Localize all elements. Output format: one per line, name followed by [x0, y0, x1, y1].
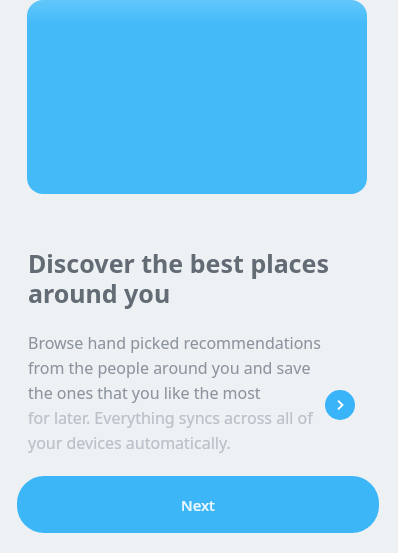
- staticText: Discover the best places around you: [28, 246, 368, 310]
- staticText: for later. Everything syncs across all o…: [28, 407, 368, 453]
- button[interactable]: Illustration: [27, 0, 367, 194]
- button[interactable]: Next page: [325, 390, 355, 420]
- staticText: Browse hand picked recommendations from …: [28, 332, 368, 403]
- button[interactable]: Next: [17, 476, 379, 533]
- staticText: Next: [181, 495, 215, 515]
